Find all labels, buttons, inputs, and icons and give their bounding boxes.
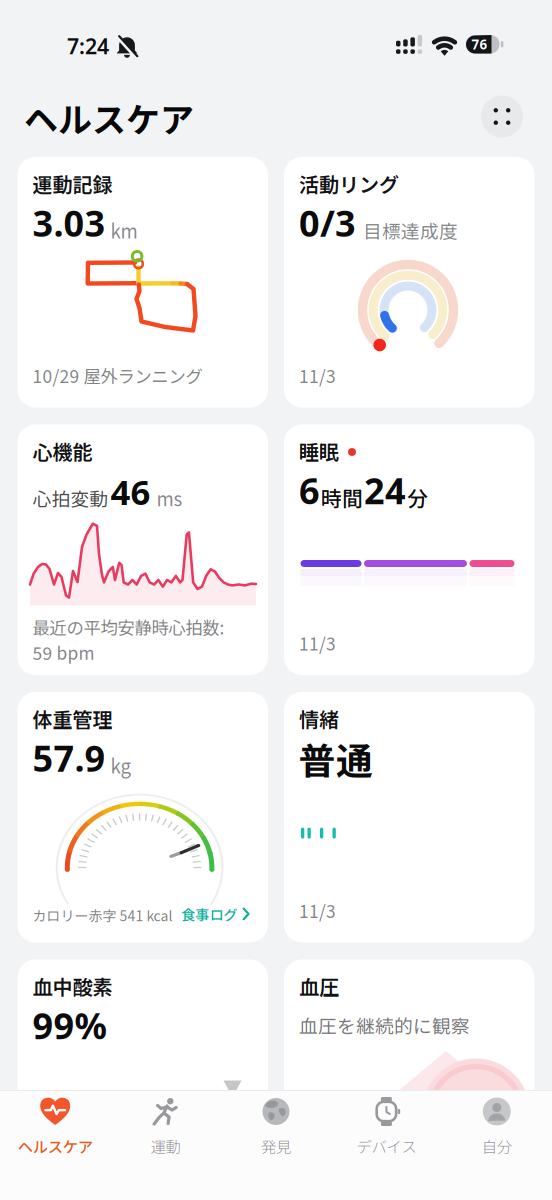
- button[interactable]: 食事ログ: [181, 904, 250, 924]
- staticText: 普通: [299, 732, 373, 785]
- button[interactable]: More options: [481, 95, 523, 137]
- staticText: 24: [364, 466, 406, 514]
- staticText: 0/3: [299, 199, 356, 247]
- button[interactable]: ヘルスケア: [0, 1090, 110, 1198]
- staticText: 情緒: [299, 704, 339, 733]
- staticText: 99%: [32, 1001, 106, 1049]
- button[interactable]: 情緒: [284, 692, 534, 942]
- staticText: 血圧を継続的に観察: [299, 1011, 470, 1038]
- staticText: 57.9: [32, 734, 105, 782]
- button[interactable]: 活動リング: [284, 157, 534, 407]
- button[interactable]: 血中酸素: [17, 959, 268, 1200]
- staticText: 3.03: [32, 199, 105, 247]
- button[interactable]: 運動記録: [17, 157, 268, 407]
- staticText: 11/3: [299, 630, 336, 656]
- staticText: 時間: [321, 482, 363, 512]
- staticText: 11/3: [299, 363, 336, 388]
- button[interactable]: 自分: [442, 1090, 552, 1198]
- staticText: 心拍変動: [32, 484, 108, 511]
- staticText: ヘルスケア: [18, 1135, 93, 1157]
- staticText: 76: [471, 35, 487, 53]
- staticText: 10/29 屋外ランニング: [32, 363, 202, 388]
- staticText: ヘルスケア: [24, 93, 194, 142]
- staticText: 運動: [151, 1135, 181, 1157]
- staticText: 分: [407, 482, 428, 512]
- staticText: 6: [299, 466, 320, 514]
- staticText: 最近の平均安静時心拍数: 59 bpm: [32, 614, 224, 665]
- staticText: 睡眠: [299, 436, 339, 465]
- staticText: 目標達成度: [363, 217, 458, 244]
- staticText: 食事ログ: [181, 904, 237, 924]
- button[interactable]: 発見: [221, 1090, 331, 1198]
- staticText: 血圧: [299, 971, 339, 1000]
- staticText: 自分: [482, 1135, 512, 1157]
- staticText: 発見: [261, 1135, 291, 1157]
- staticText: km: [110, 217, 137, 244]
- staticText: 心機能: [32, 436, 92, 465]
- button[interactable]: 運動: [111, 1090, 221, 1198]
- staticText: 11/3: [299, 898, 336, 923]
- staticText: 活動リング: [299, 169, 399, 198]
- button[interactable]: 体重管理: [17, 692, 268, 942]
- button[interactable]: デバイス: [331, 1090, 441, 1198]
- button[interactable]: 睡眠: [284, 424, 534, 675]
- staticText: デバイス: [356, 1135, 416, 1157]
- staticText: kg: [110, 752, 131, 779]
- staticText: 血中酸素: [32, 971, 112, 1000]
- button[interactable]: 血圧: [284, 959, 534, 1200]
- staticText: 運動記録: [32, 169, 112, 198]
- staticText: ms: [152, 484, 182, 511]
- staticText: 46: [110, 468, 150, 514]
- button[interactable]: 心機能: [17, 424, 268, 675]
- staticText: 体重管理: [32, 704, 112, 733]
- staticText: 7:24: [67, 32, 109, 60]
- staticText: カロリー赤字 541 kcal: [32, 905, 172, 925]
